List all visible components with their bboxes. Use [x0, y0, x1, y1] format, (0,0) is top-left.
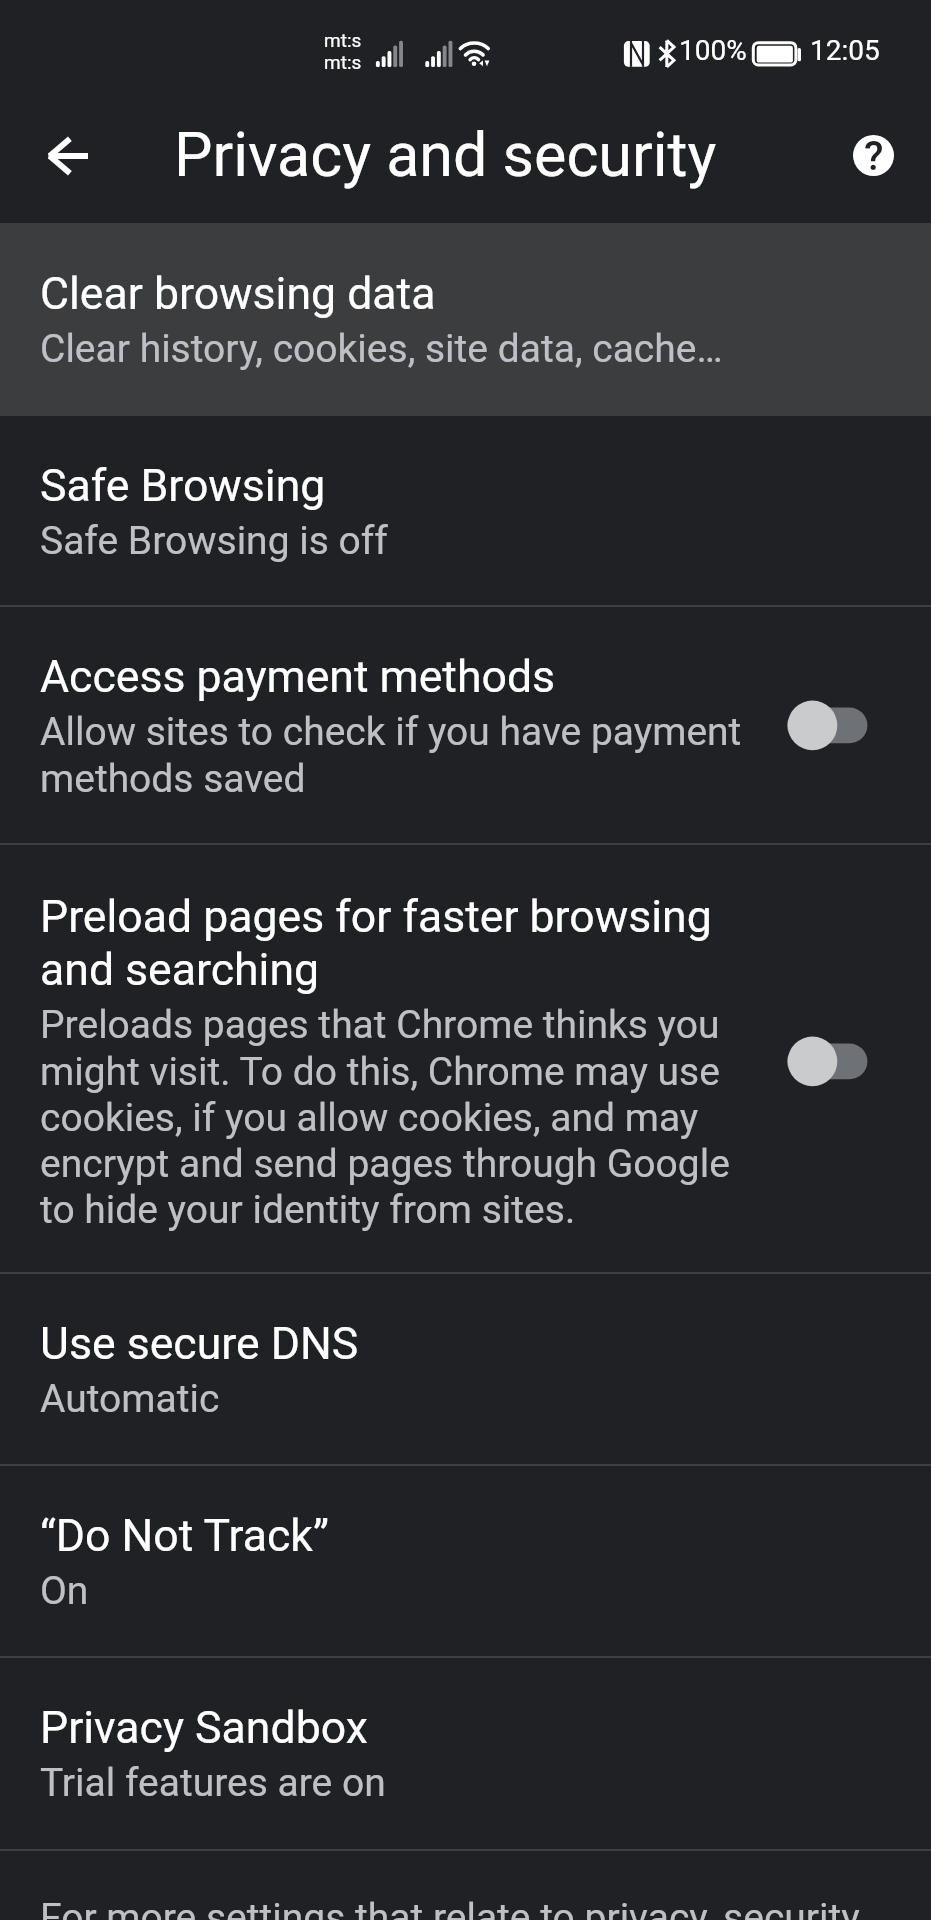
button[interactable]: “Do Not Track” [0, 1466, 931, 1656]
staticText: “Do Not Track” [40, 1510, 329, 1562]
staticText: Safe Browsing [40, 460, 326, 512]
staticText: Allow sites to check if you have payment… [40, 709, 760, 801]
staticText: Safe Browsing is off [40, 518, 388, 564]
staticText: mt:s [324, 51, 362, 73]
staticText: mt:s [324, 29, 362, 51]
button[interactable]: Toggle [787, 1034, 885, 1090]
staticText: Access payment methods [40, 651, 556, 703]
staticText: Privacy Sandbox [40, 1702, 368, 1754]
staticText: For more settings that relate to privacy… [40, 1895, 860, 1920]
staticText: Trial features are on [40, 1760, 386, 1806]
button[interactable]: Privacy Sandbox [0, 1658, 931, 1849]
staticText: Use secure DNS [40, 1318, 359, 1370]
button[interactable]: Use secure DNS [0, 1274, 931, 1464]
staticText: 12:05 [810, 34, 880, 67]
button[interactable]: Help [833, 115, 913, 195]
button[interactable]: Preload pages for faster browsing and se… [0, 845, 931, 1272]
staticText: Preloads pages that Chrome thinks you mi… [40, 1002, 760, 1232]
staticText: Clear history, cookies, site data, cache… [40, 326, 723, 372]
button[interactable]: Access payment methods [0, 607, 931, 843]
staticText: ? [864, 135, 884, 174]
staticText: Clear browsing data [40, 268, 436, 320]
staticText: Privacy and security [174, 119, 717, 190]
staticText: Automatic [40, 1376, 220, 1422]
button[interactable]: Safe Browsing [0, 416, 931, 605]
staticText: On [40, 1568, 89, 1614]
button[interactable]: Toggle [787, 698, 885, 754]
button[interactable]: Clear browsing data [0, 223, 931, 416]
staticText: Preload pages for faster browsing and se… [40, 891, 760, 996]
button[interactable]: Back [24, 112, 112, 200]
staticText: 100% [679, 34, 747, 67]
